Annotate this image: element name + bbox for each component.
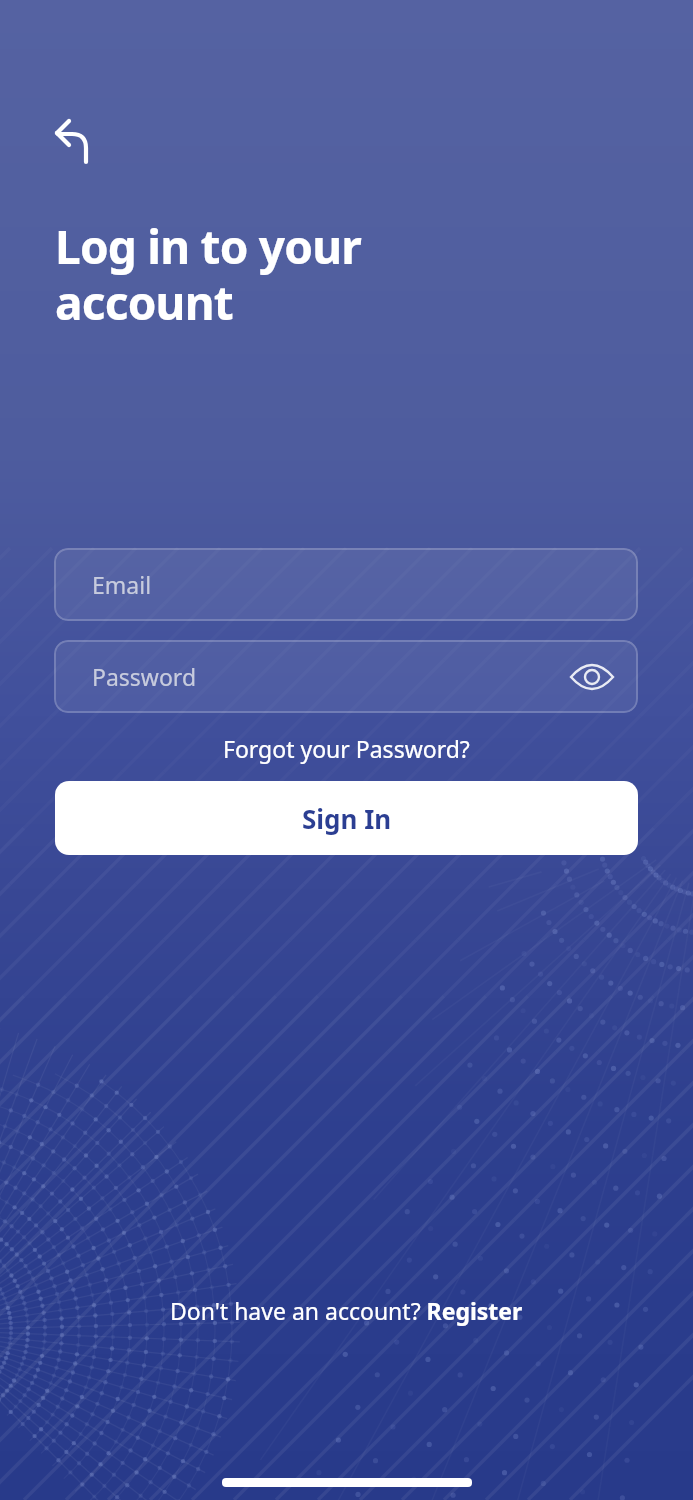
button[interactable]: Email (54, 548, 638, 621)
button[interactable]: Forgot your Password? (223, 733, 470, 764)
button[interactable] (42, 103, 104, 165)
button[interactable]: Sign In (55, 781, 638, 855)
button[interactable] (570, 661, 614, 693)
staticText: Password (92, 661, 197, 692)
staticText: Email (92, 569, 152, 600)
staticText: Sign In (302, 801, 392, 836)
staticText: Log in to your account (55, 215, 362, 333)
button[interactable]: Don't have an account? Register (170, 1295, 523, 1326)
button[interactable]: Password (54, 640, 638, 713)
